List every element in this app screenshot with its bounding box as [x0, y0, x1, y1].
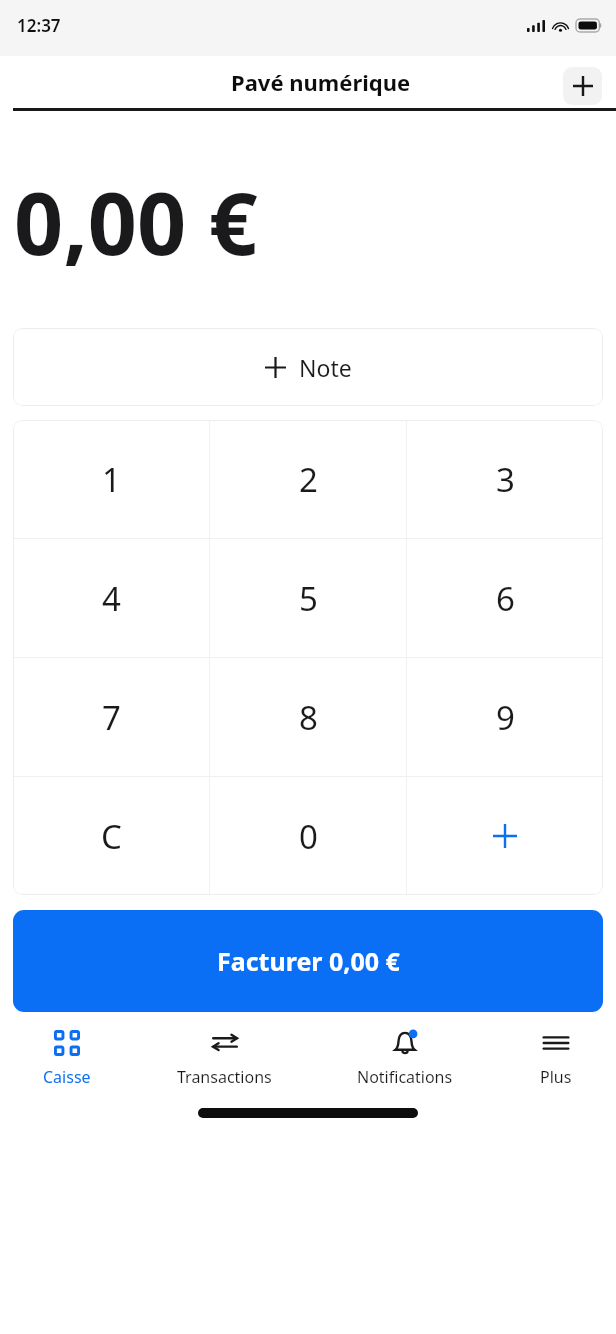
staticText: 7 — [102, 695, 121, 740]
staticText: Notifications — [357, 1066, 453, 1088]
button[interactable]: 9 — [407, 658, 603, 776]
staticText: 8 — [299, 695, 318, 740]
button[interactable]: Caisse — [29, 1020, 105, 1094]
button[interactable]: 1 — [13, 420, 209, 538]
button[interactable]: Plus — [525, 1020, 587, 1094]
button[interactable]: 6 — [407, 539, 603, 657]
staticText: 0,00 € — [14, 163, 258, 280]
button[interactable]: 3 — [407, 420, 603, 538]
button[interactable]: Note — [13, 328, 603, 406]
button[interactable]: 8 — [210, 658, 406, 776]
button[interactable]: 0 — [210, 777, 406, 895]
staticText: Pavé numérique — [231, 67, 411, 97]
staticText: 4 — [102, 576, 121, 621]
staticText: C — [101, 814, 122, 859]
staticText: Transactions — [177, 1066, 272, 1088]
staticText: 2 — [299, 457, 318, 502]
staticText: 3 — [496, 457, 515, 502]
button[interactable]: Transactions — [163, 1020, 286, 1094]
button[interactable]: 4 — [13, 539, 209, 657]
button[interactable]: 7 — [13, 658, 209, 776]
staticText: Facturer 0,00 € — [217, 944, 400, 978]
button[interactable]: 2 — [210, 420, 406, 538]
button[interactable]: Ajouter — [563, 67, 602, 105]
staticText: 6 — [496, 576, 515, 621]
button[interactable]: Pavé numérique — [13, 67, 616, 111]
button[interactable]: Facturer 0,00 € — [13, 910, 603, 1012]
staticText: Plus — [540, 1066, 572, 1088]
staticText: Caisse — [43, 1066, 91, 1088]
staticText: Note — [299, 352, 352, 383]
button[interactable]: C — [13, 777, 209, 895]
button[interactable]: 5 — [210, 539, 406, 657]
button[interactable]: Notifications — [343, 1020, 467, 1094]
staticText: 5 — [299, 576, 318, 621]
button[interactable] — [407, 777, 603, 895]
staticText: 9 — [496, 695, 515, 740]
staticText: 12:37 — [17, 14, 61, 37]
staticText: 1 — [102, 457, 121, 502]
staticText: 0 — [299, 814, 318, 859]
